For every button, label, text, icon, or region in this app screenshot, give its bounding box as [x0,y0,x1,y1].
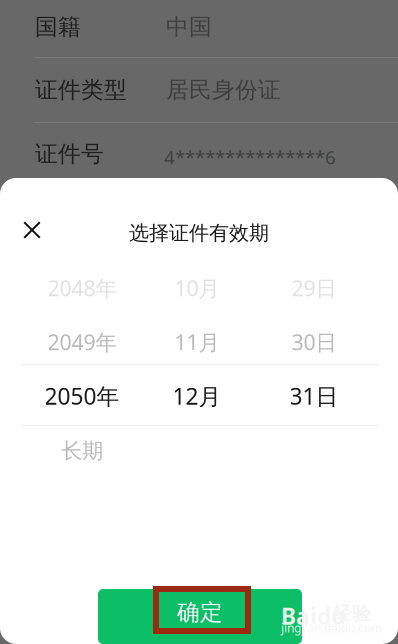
staticText: 2048年 [47,274,116,302]
staticText: 经验 [333,602,371,625]
staticText: 29日 [291,274,336,302]
staticText: 12月 [172,381,221,411]
staticText: 选择证件有效期 [129,221,269,245]
staticText: 11月 [174,328,219,356]
staticText: 2049年 [47,328,116,356]
staticText: 居民身份证 [166,76,281,104]
staticText: 证件类型 [35,76,127,104]
staticText: 10月 [174,274,219,302]
staticText: 31日 [289,381,338,411]
staticText: 国籍 [35,13,81,41]
staticText: jingyan.baidu.com [281,620,382,636]
staticText: Baidu [281,601,346,631]
staticText: 30日 [291,328,336,356]
button[interactable]: 确定 [98,589,302,644]
staticText: 长期 [61,438,103,464]
staticText: 2050年 [44,381,119,411]
button[interactable]: 关闭 [23,221,67,265]
staticText: 4***************6 [164,145,336,169]
staticText: 中国 [166,13,212,41]
staticText: 证件号 [35,140,104,168]
staticText: 确定 [177,599,223,626]
